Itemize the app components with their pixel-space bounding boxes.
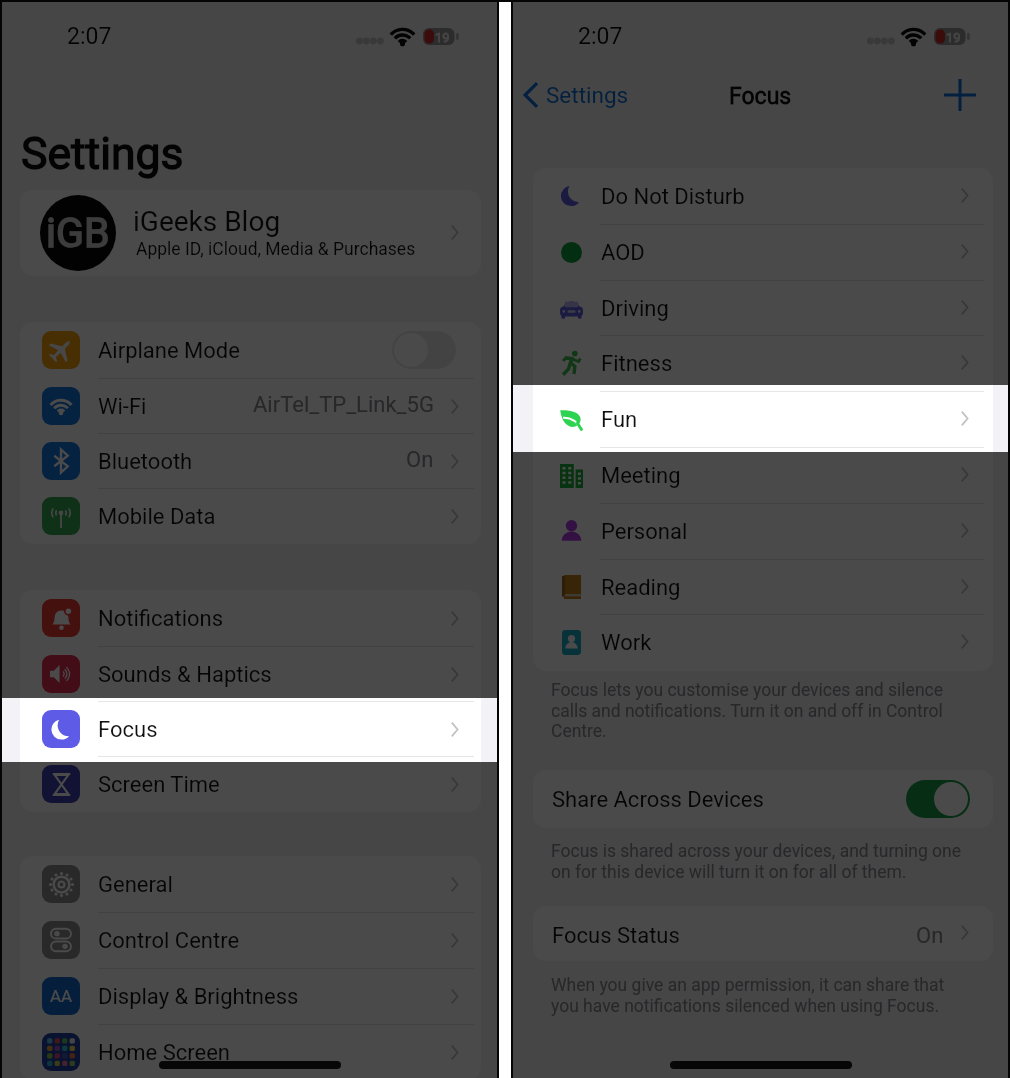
staticText: Fitness — [601, 351, 673, 377]
staticText: Share Across Devices — [552, 787, 764, 813]
staticText: iGB — [46, 209, 110, 257]
button[interactable]: Focus — [20, 701, 481, 757]
button[interactable]: Fun — [533, 391, 993, 447]
staticText: 2:07 — [578, 23, 623, 50]
staticText: Personal — [601, 519, 688, 545]
staticText: Mobile Data — [98, 504, 216, 530]
button[interactable]: Share Across Devices — [533, 770, 993, 828]
staticText: 19 — [435, 30, 450, 45]
button[interactable]: Bluetooth — [20, 433, 481, 489]
staticText: Airplane Mode — [98, 338, 240, 364]
button[interactable]: Sounds & Haptics — [20, 646, 481, 702]
button[interactable]: Notifications — [20, 590, 481, 646]
button[interactable]: Driving — [533, 280, 993, 336]
staticText: Apple ID, iCloud, Media & Purchases — [136, 239, 416, 260]
staticText: Wi-Fi — [98, 394, 147, 420]
button[interactable]: Focus Status — [533, 906, 993, 961]
staticText: Do Not Disturb — [601, 184, 745, 210]
button[interactable]: Personal — [533, 503, 993, 559]
staticText: Settings — [21, 128, 184, 180]
staticText: Focus Status — [552, 923, 680, 949]
button[interactable]: Add Focus — [938, 73, 982, 117]
staticText: When you give an app permission, it can … — [551, 975, 975, 1017]
staticText: AA — [50, 986, 73, 1006]
staticText: 19 — [946, 30, 961, 45]
staticText: Notifications — [98, 606, 224, 632]
button[interactable]: Wi-Fi — [20, 378, 481, 434]
button[interactable]: Do Not Disturb — [533, 168, 993, 224]
button[interactable]: Mobile Data — [20, 488, 481, 544]
button[interactable]: iGB — [20, 190, 481, 276]
staticText: Meeting — [601, 463, 681, 489]
staticText: Focus lets you customise your devices an… — [551, 680, 975, 742]
staticText: On — [916, 923, 944, 949]
button[interactable]: Home Screen — [20, 1024, 481, 1078]
staticText: Settings — [546, 82, 629, 108]
button[interactable]: AA — [20, 968, 481, 1024]
staticText: iGeeks Blog — [133, 205, 281, 238]
button[interactable]: Fitness — [533, 335, 993, 391]
staticText: On — [406, 447, 434, 473]
staticText: Focus — [98, 717, 158, 743]
staticText: Control Centre — [98, 928, 240, 954]
button[interactable]: AOD — [533, 224, 993, 280]
button[interactable]: Airplane Mode — [20, 322, 481, 378]
staticText: 2:07 — [67, 23, 112, 50]
staticText: Screen Time — [98, 772, 220, 798]
staticText: AOD — [601, 240, 645, 266]
button[interactable]: Screen Time — [20, 756, 481, 812]
staticText: Focus — [729, 83, 792, 110]
staticText: Driving — [601, 296, 669, 322]
staticText: AirTel_TP_Link_5G — [253, 392, 434, 418]
button[interactable]: On — [906, 780, 970, 818]
staticText: Reading — [601, 575, 681, 601]
staticText: Sounds & Haptics — [98, 662, 272, 688]
staticText: Focus is shared across your devices, and… — [551, 841, 975, 883]
staticText: Work — [601, 630, 652, 656]
staticText: General — [98, 872, 173, 898]
staticText: Home Screen — [98, 1040, 230, 1066]
button[interactable]: Off — [392, 331, 456, 369]
staticText: Bluetooth — [98, 449, 193, 475]
button[interactable]: Work — [533, 614, 993, 670]
button[interactable]: Settings — [519, 74, 629, 116]
button[interactable]: General — [20, 856, 481, 912]
button[interactable]: Control Centre — [20, 912, 481, 968]
staticText: Fun — [601, 407, 638, 433]
button[interactable]: Meeting — [533, 447, 993, 503]
button[interactable]: Reading — [533, 559, 993, 615]
staticText: Display & Brightness — [98, 984, 299, 1010]
